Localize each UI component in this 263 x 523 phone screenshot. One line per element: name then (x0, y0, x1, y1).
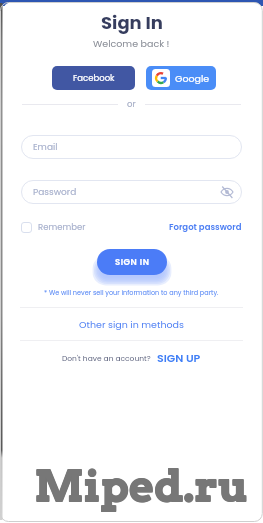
staticText: Miped.ru (35, 461, 248, 513)
staticText: Miped.ru (35, 460, 248, 512)
staticText: Google (175, 72, 210, 85)
button[interactable]: SIGN IN (97, 249, 167, 275)
staticText: Remember (38, 221, 86, 233)
button[interactable]: Remember (21, 221, 86, 233)
staticText: Welcome back ! (93, 37, 170, 50)
staticText: Miped.ru (34, 461, 247, 513)
staticText: * We will never sell your information to… (44, 288, 219, 297)
staticText: SIGN IN (115, 256, 150, 268)
button[interactable]: SIGN UP (157, 350, 201, 365)
button[interactable]: Facebook (52, 66, 135, 90)
staticText: Miped.ru (34, 460, 247, 512)
staticText: Email (33, 141, 58, 154)
staticText: or (127, 98, 136, 110)
staticText: Don't have an account? (62, 353, 151, 363)
staticText: Password (33, 186, 77, 199)
button[interactable]: Email (21, 135, 242, 159)
button[interactable]: Other sign in methods (79, 318, 184, 331)
staticText: Facebook (73, 72, 115, 84)
button[interactable]: Google (146, 66, 216, 90)
button[interactable]: Forgot password (169, 221, 242, 233)
staticText: Sign In (101, 10, 163, 35)
button[interactable]: Password (21, 180, 242, 204)
